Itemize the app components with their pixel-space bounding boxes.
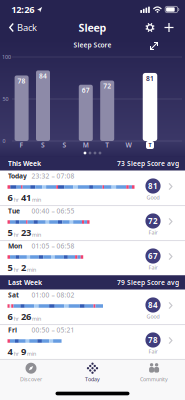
staticText: Discover	[20, 376, 42, 383]
button[interactable]: Sat	[0, 289, 185, 324]
staticText: min	[32, 231, 41, 238]
staticText: 4	[7, 345, 12, 358]
button[interactable]	[162, 21, 175, 34]
staticText: 23	[21, 226, 31, 239]
staticText: 72	[103, 81, 111, 90]
staticText: hr	[14, 350, 19, 357]
staticText: Sat	[8, 290, 19, 299]
staticText: 5	[7, 226, 12, 239]
staticText: 0	[2, 137, 5, 145]
button[interactable]: Community	[129, 359, 179, 385]
staticText: 5	[7, 261, 12, 274]
button[interactable]: Back	[6, 19, 40, 35]
button[interactable]: Fri	[0, 324, 185, 359]
staticText: hr	[14, 315, 19, 322]
staticText: Mon	[8, 241, 22, 250]
staticText: Tue	[8, 206, 20, 215]
staticText: 73 Sleep Score avg	[117, 159, 179, 168]
staticText: 01:00 – 08:02	[31, 290, 74, 299]
button[interactable]	[148, 40, 160, 52]
staticText: hr	[14, 266, 19, 273]
staticText: 67	[82, 86, 90, 95]
staticText: Fri	[8, 325, 17, 334]
staticText: 84	[39, 71, 47, 80]
button[interactable]: Discover	[6, 359, 56, 385]
staticText: Fair	[148, 229, 157, 236]
staticText: 79 Sleep Score avg	[117, 278, 179, 287]
staticText: min	[27, 266, 36, 273]
staticText: 6	[7, 191, 12, 204]
staticText: Back	[17, 21, 37, 34]
staticText: 00:40 – 06:55	[31, 206, 74, 215]
staticText: This Week	[8, 159, 41, 168]
staticText: T	[105, 141, 109, 149]
staticText: Good	[146, 313, 159, 320]
staticText: Fair	[148, 264, 157, 271]
staticText: hr	[14, 231, 19, 238]
staticText: 50	[2, 95, 8, 103]
staticText: 81	[148, 181, 158, 191]
staticText: 78	[148, 335, 158, 345]
staticText: Sleep Score	[73, 41, 111, 49]
staticText: Last Week	[8, 278, 42, 287]
staticText: 01:05 – 06:58	[31, 241, 74, 250]
staticText: 81	[146, 74, 154, 83]
staticText: hr	[14, 196, 19, 203]
staticText: Sleep	[78, 20, 106, 35]
staticText: 9	[21, 345, 26, 358]
staticText: W	[126, 141, 132, 149]
staticText: 67	[148, 251, 158, 261]
staticText: S	[62, 141, 66, 149]
staticText: 23:32 – 07:08	[31, 171, 74, 180]
staticText: 26	[21, 310, 31, 323]
staticText: 00:50 – 05:21	[31, 325, 74, 334]
staticText: 78	[18, 76, 26, 85]
staticText: Fair	[148, 348, 157, 355]
staticText: 72	[148, 216, 158, 226]
staticText: Community	[140, 376, 168, 383]
staticText: 12:26	[11, 3, 34, 16]
button[interactable]: Tue	[0, 205, 185, 240]
staticText: min	[27, 350, 36, 357]
button[interactable]: Today	[67, 359, 117, 385]
staticText: 6	[7, 310, 12, 323]
staticText: T	[148, 141, 151, 149]
staticText: 41	[21, 191, 31, 204]
button[interactable]: Today	[0, 170, 185, 205]
button[interactable]	[143, 20, 157, 34]
staticText: 2	[21, 261, 26, 274]
staticText: 84	[148, 300, 158, 310]
staticText: 100	[2, 53, 11, 61]
staticText: Today	[8, 171, 27, 180]
staticText: min	[32, 315, 41, 322]
staticText: F	[20, 141, 24, 149]
staticText: Good	[146, 194, 159, 201]
staticText: S	[41, 141, 45, 149]
staticText: Today	[85, 376, 100, 383]
staticText: min	[32, 196, 41, 203]
staticText: M	[83, 141, 89, 149]
button[interactable]: Mon	[0, 240, 185, 275]
